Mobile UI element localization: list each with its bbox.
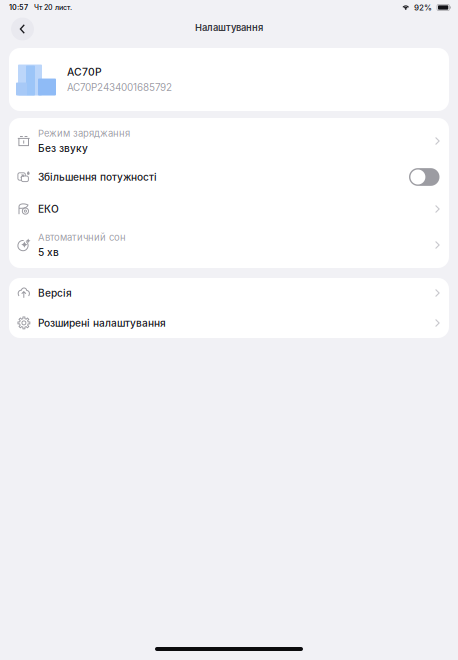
staticText: Чт 20 лист.: [34, 3, 72, 12]
staticText: Режим заряджання: [38, 128, 130, 139]
staticText: Розширені налаштування: [38, 317, 166, 329]
button[interactable]: Розширені налаштування: [9, 308, 449, 338]
staticText: Налаштування: [195, 22, 263, 33]
button[interactable]: ЕКО: [9, 193, 449, 225]
staticText: Версія: [38, 287, 72, 299]
button[interactable]: Збільшення потужності: [9, 161, 449, 193]
staticText: Автоматичний сон: [38, 232, 126, 243]
button[interactable]: Автоматичний сон: [9, 225, 449, 265]
staticText: ЕКО: [38, 203, 59, 215]
button[interactable]: Версія: [9, 278, 449, 308]
staticText: AC70P2434001685792: [67, 81, 172, 93]
staticText: AC70P: [67, 66, 102, 78]
button[interactable]: Режим заряджання: [9, 121, 449, 161]
staticText: 10:57: [9, 3, 28, 12]
staticText: Без звуку: [38, 142, 88, 154]
button[interactable]: Назад: [8, 16, 37, 42]
staticText: 92%: [414, 3, 432, 12]
staticText: 5 хв: [38, 246, 59, 258]
staticText: Збільшення потужності: [38, 171, 157, 183]
